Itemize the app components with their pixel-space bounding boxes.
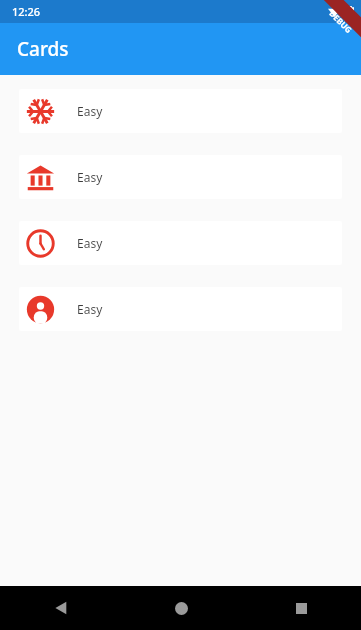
button[interactable]: Account: [19, 287, 342, 331]
button[interactable]: Back: [0, 586, 121, 630]
staticText: Easy: [77, 301, 103, 317]
button[interactable]: Snowflake: [19, 89, 342, 133]
other: Clock: [24, 227, 56, 259]
staticText: 12:26: [12, 4, 41, 19]
staticText: Easy: [77, 169, 103, 185]
button[interactable]: Account balance: [19, 155, 342, 199]
staticText: Easy: [77, 235, 103, 251]
staticText: DEBUG: [327, 8, 355, 35]
staticText: Easy: [77, 103, 103, 119]
other: Snowflake: [24, 95, 56, 127]
button[interactable]: Home: [121, 586, 241, 630]
button[interactable]: Clock: [19, 221, 342, 265]
staticText: Cards: [17, 36, 69, 62]
other: Account: [24, 293, 56, 325]
button[interactable]: Recent apps: [241, 586, 361, 630]
other: Account balance: [24, 161, 56, 193]
